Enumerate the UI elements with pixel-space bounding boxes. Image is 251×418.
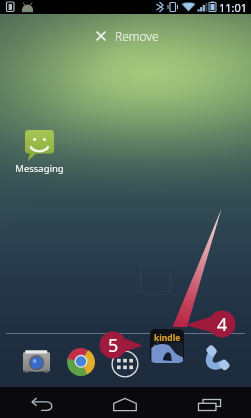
button[interactable]: Phone [197, 349, 226, 377]
button[interactable]: Back [0, 387, 83, 418]
button[interactable]: All apps [111, 350, 139, 378]
staticText: 4 [217, 312, 228, 337]
button[interactable]: Remove [96, 28, 159, 44]
staticText: Remove [115, 28, 159, 44]
staticText: kindle [154, 332, 181, 344]
button[interactable]: Messaging [8, 130, 71, 175]
button[interactable]: 5 [100, 332, 126, 358]
staticText: 11:01 [219, 0, 248, 14]
button[interactable]: Camera [23, 349, 50, 373]
staticText: 5 [108, 333, 119, 358]
button[interactable]: Kindle [150, 329, 184, 363]
button[interactable]: 4 [209, 311, 235, 337]
staticText: Messaging [15, 162, 64, 175]
button[interactable]: Chrome [67, 348, 95, 376]
button[interactable]: Recents [167, 387, 251, 418]
button[interactable]: Home [83, 387, 167, 418]
